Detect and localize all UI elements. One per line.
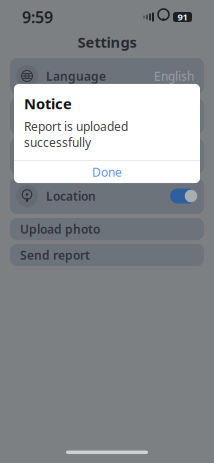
button[interactable]: Language [10, 58, 204, 94]
staticText: English [154, 68, 194, 84]
button[interactable]: Location [10, 178, 204, 214]
button[interactable]: Upload photo [10, 218, 204, 240]
staticText: Location [46, 188, 96, 204]
staticText: Commit Date [120, 108, 194, 124]
staticText: Notice [24, 94, 72, 113]
staticText: Done [92, 164, 122, 180]
staticText: Notification [46, 148, 115, 164]
staticText: Language [46, 68, 106, 84]
button[interactable]: Notification [10, 138, 204, 174]
staticText: Upload photo [20, 221, 100, 237]
button[interactable]: Done [14, 161, 200, 183]
button[interactable]: Task Date [10, 98, 204, 134]
staticText: 9:59 [22, 6, 53, 28]
staticText: Report is uploaded successfully [24, 118, 128, 150]
staticText: 91 [177, 11, 187, 23]
staticText: Send report [20, 247, 90, 263]
staticText: Settings [77, 32, 136, 52]
button[interactable]: Send report [10, 244, 204, 266]
staticText: Task Date [46, 108, 103, 124]
